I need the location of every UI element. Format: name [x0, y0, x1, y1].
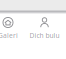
- button[interactable]: Dich bulu: [25, 17, 64, 40]
- staticText: Dich bulu: [29, 31, 59, 40]
- staticText: Galeri: [0, 31, 18, 40]
- button[interactable]: Galeri: [0, 17, 25, 40]
